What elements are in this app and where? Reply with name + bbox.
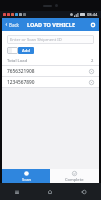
- button[interactable]: Add: [18, 47, 34, 54]
- staticText: Enter or Scan Shipment ID: [10, 37, 62, 43]
- button[interactable]: Complete: [50, 169, 99, 183]
- button[interactable]: 7656321908: [2, 66, 99, 76]
- staticText: Back: [9, 22, 20, 28]
- staticText: 7656321908: [7, 68, 35, 75]
- button[interactable]: Back: [67, 183, 101, 200]
- button[interactable]: Scan: [2, 169, 50, 183]
- staticText: 08:44: [87, 12, 98, 17]
- button[interactable]: Recents: [0, 183, 33, 200]
- staticText: Add: [22, 48, 30, 54]
- staticText: Total Load: [7, 58, 28, 64]
- button[interactable]: 1234567890: [2, 77, 99, 87]
- button[interactable]: Toggle: [7, 47, 18, 54]
- staticText: Scan: [22, 177, 31, 182]
- staticText: 2: [91, 58, 94, 64]
- staticText: Complete: [65, 177, 84, 182]
- button[interactable]: Settings: [87, 18, 99, 31]
- staticText: 1234567890: [7, 79, 35, 86]
- button[interactable]: Home: [33, 183, 67, 200]
- staticText: LOAD TO VEHICLE: [27, 21, 75, 28]
- button[interactable]: Enter or Scan Shipment ID: [7, 35, 94, 44]
- button[interactable]: Back: [2, 18, 23, 31]
